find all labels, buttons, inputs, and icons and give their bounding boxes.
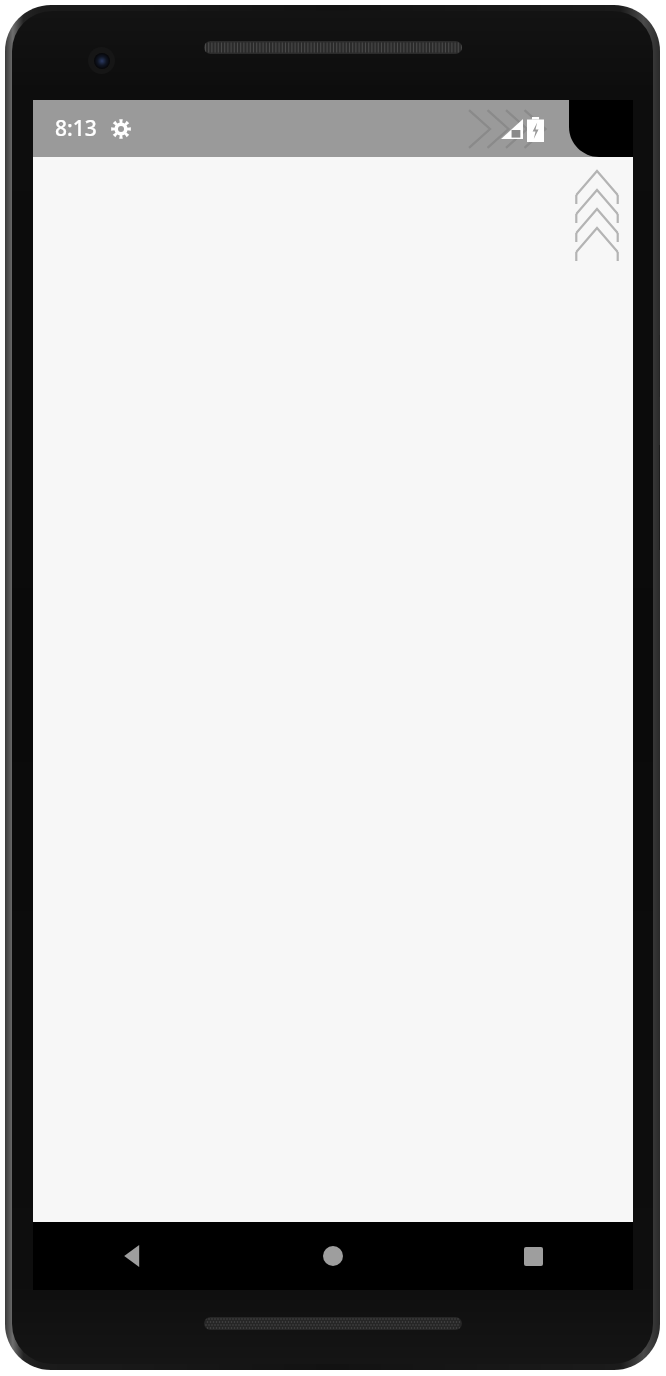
button[interactable]: Home — [233, 1222, 433, 1290]
button[interactable]: Back — [33, 1222, 233, 1290]
other: Settings — [111, 119, 131, 139]
button[interactable]: Recent apps — [433, 1222, 633, 1290]
button[interactable]: Scroll up — [569, 159, 625, 247]
staticText: 8:13 — [55, 114, 97, 143]
